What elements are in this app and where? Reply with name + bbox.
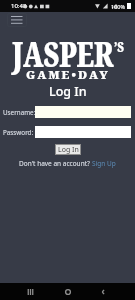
button[interactable]: Log In <box>55 144 81 155</box>
button[interactable]: Sign Up <box>92 159 116 168</box>
staticText: Log In <box>58 145 79 155</box>
staticText: JASPER <box>12 30 114 77</box>
staticText: Username: <box>3 108 36 117</box>
staticText: ’S <box>114 37 124 56</box>
staticText: 100% <box>111 3 126 10</box>
staticText: Password: <box>3 128 34 137</box>
button[interactable]: Back <box>95 283 111 300</box>
button[interactable]: Recents <box>22 283 38 300</box>
button[interactable]: Home <box>60 283 76 300</box>
staticText: Don't have an account? <box>19 159 92 168</box>
staticText: GAME•DAY <box>26 67 110 83</box>
staticText: 10:48 <box>11 2 27 10</box>
staticText: Log In <box>49 83 87 100</box>
button[interactable]: Menu <box>7 13 27 27</box>
